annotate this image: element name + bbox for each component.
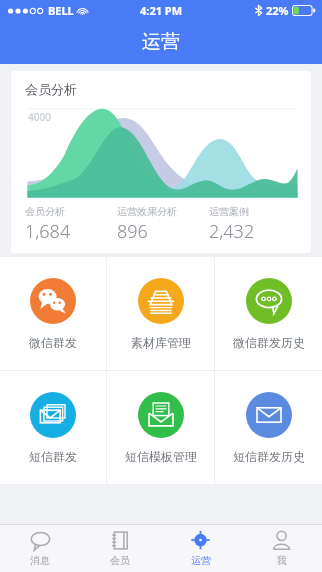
button[interactable]: 运营 xyxy=(160,525,241,572)
staticText: 1,684 xyxy=(25,219,71,244)
staticText: 短信群发 xyxy=(29,449,77,464)
staticText: 消息 xyxy=(30,554,50,567)
button[interactable]: 素材库管理 xyxy=(107,257,214,370)
staticText: 运营效果分析 xyxy=(117,205,177,218)
staticText: 微信群发 xyxy=(29,335,77,350)
staticText: 素材库管理 xyxy=(131,335,191,350)
staticText: 运营案例 xyxy=(209,205,249,218)
button[interactable]: 短信模板管理 xyxy=(107,371,214,484)
staticText: 22% xyxy=(266,3,289,18)
button[interactable]: 短信群发历史 xyxy=(215,371,322,484)
staticText: 会员分析 xyxy=(25,81,77,97)
staticText: 4:21 PM xyxy=(140,3,183,18)
staticText: 短信群发历史 xyxy=(233,449,305,464)
staticText: 2,432 xyxy=(209,219,255,244)
staticText: 会员 xyxy=(110,554,130,567)
staticText: 运营 xyxy=(191,554,211,567)
button[interactable]: 短信群发 xyxy=(0,371,106,484)
button[interactable]: 会员 xyxy=(80,525,160,572)
staticText: 4000 xyxy=(28,110,51,124)
button[interactable]: 消息 xyxy=(0,525,80,572)
staticText: 我 xyxy=(277,554,287,567)
staticText: 会员分析 xyxy=(25,205,65,218)
staticText: 微信群发历史 xyxy=(233,335,305,350)
button[interactable]: 我 xyxy=(241,525,322,572)
staticText: 运营 xyxy=(142,30,180,54)
button[interactable]: 微信群发历史 xyxy=(215,257,322,370)
staticText: BELL xyxy=(48,3,74,18)
staticText: 短信模板管理 xyxy=(125,449,197,464)
staticText: 896 xyxy=(117,219,148,244)
button[interactable]: 微信群发 xyxy=(0,257,106,370)
